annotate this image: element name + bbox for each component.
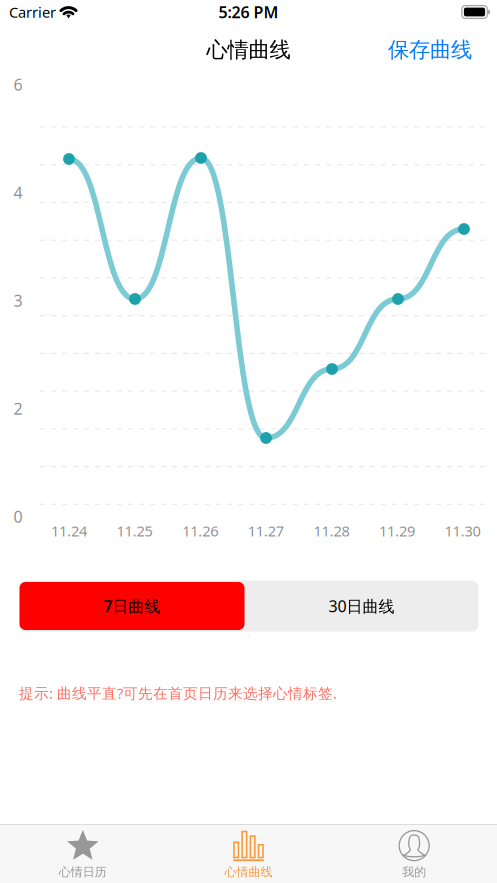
staticText: 7日曲线 xyxy=(103,595,160,617)
staticText: Carrier xyxy=(9,2,56,22)
staticText: 心情曲线 xyxy=(224,865,272,879)
staticText: 11.28 xyxy=(313,521,349,541)
staticText: 11.30 xyxy=(445,521,481,541)
button[interactable]: 我的 xyxy=(331,823,497,883)
button[interactable]: 保存曲线 xyxy=(380,29,480,71)
staticText: 11.25 xyxy=(117,521,153,541)
staticText: 保存曲线 xyxy=(388,37,472,63)
button[interactable]: 7日曲线 xyxy=(19,582,244,630)
staticText: 2 xyxy=(13,398,22,419)
staticText: 3 xyxy=(13,290,22,311)
staticText: 心情日历 xyxy=(59,865,107,879)
staticText: 11.24 xyxy=(51,521,87,541)
staticText: 5:26 PM xyxy=(218,1,278,23)
button[interactable]: 心情日历 xyxy=(0,823,166,883)
button[interactable]: 30日曲线 xyxy=(244,582,478,630)
staticText: 11.26 xyxy=(182,521,218,541)
staticText: 我的 xyxy=(402,865,426,879)
staticText: 30日曲线 xyxy=(328,595,394,617)
staticText: 11.27 xyxy=(248,521,284,541)
staticText: 提示: 曲线平直?可先在首页日历来选择心情标签. xyxy=(19,683,337,703)
staticText: 11.29 xyxy=(379,521,415,541)
button[interactable]: 心情曲线 xyxy=(166,823,331,883)
staticText: 0 xyxy=(13,506,22,527)
staticText: 4 xyxy=(13,182,22,203)
staticText: 心情曲线 xyxy=(206,37,290,63)
staticText: 6 xyxy=(13,74,22,95)
